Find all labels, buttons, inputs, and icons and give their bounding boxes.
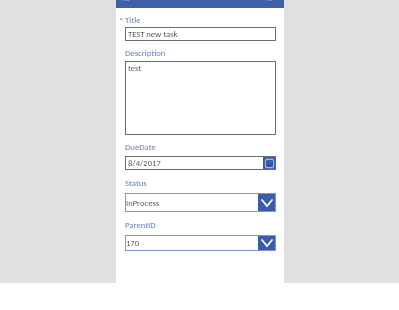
- staticText: 8/4/2017: [128, 158, 263, 168]
- button[interactable]: 170: [125, 235, 276, 251]
- staticText: Description: [125, 48, 166, 59]
- staticText: Status: [125, 178, 147, 189]
- staticText: pg: [123, 0, 132, 1]
- button[interactable]: TEST new task: [125, 27, 276, 41]
- staticText: p: [267, 0, 272, 1]
- staticText: 170: [126, 238, 258, 248]
- staticText: DueDate: [125, 142, 156, 153]
- staticText: InProcess: [126, 198, 258, 208]
- button[interactable]: Open date picker: [263, 156, 276, 170]
- staticText: TEST new task: [128, 29, 178, 39]
- staticText: ParentID: [125, 220, 156, 231]
- staticText: *: [119, 16, 124, 27]
- staticText: test: [128, 63, 142, 73]
- button[interactable]: test: [125, 61, 276, 135]
- button[interactable]: InProcess: [125, 193, 276, 212]
- staticText: Title: [125, 15, 141, 26]
- button[interactable]: pg: [116, 0, 284, 8]
